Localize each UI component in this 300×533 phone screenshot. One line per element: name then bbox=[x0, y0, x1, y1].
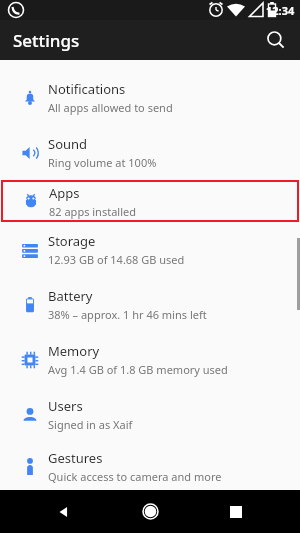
button[interactable]: Battery bbox=[0, 277, 300, 332]
staticText: Sound bbox=[48, 135, 88, 153]
button[interactable]: Gestures bbox=[0, 442, 300, 490]
staticText: Users bbox=[48, 397, 83, 415]
staticText: 12:34 bbox=[266, 3, 295, 18]
staticText: All apps allowed to send bbox=[48, 100, 173, 115]
staticText: 82 apps installed bbox=[49, 204, 136, 219]
button[interactable]: Memory bbox=[0, 332, 300, 387]
staticText: 12.93 GB of 14.68 GB used bbox=[48, 252, 185, 267]
button[interactable]: Apps bbox=[1, 180, 299, 222]
staticText: Memory bbox=[48, 342, 100, 360]
staticText: Ring volume at 100% bbox=[48, 155, 157, 170]
button[interactable]: Recents bbox=[214, 490, 258, 533]
staticText: Gestures bbox=[48, 449, 103, 467]
button[interactable]: Home bbox=[128, 490, 172, 533]
button[interactable]: Sound bbox=[0, 125, 300, 180]
staticText: Settings bbox=[13, 29, 80, 52]
staticText: Quick access to camera and more bbox=[48, 469, 222, 484]
button[interactable]: Search bbox=[258, 22, 294, 58]
button[interactable]: Users bbox=[0, 387, 300, 442]
staticText: Notifications bbox=[48, 80, 126, 98]
staticText: 38% – approx. 1 hr 46 mins left bbox=[48, 307, 207, 322]
staticText: Apps bbox=[49, 184, 80, 202]
staticText: Battery bbox=[48, 287, 93, 305]
staticText: Storage bbox=[48, 232, 96, 250]
button[interactable]: Back bbox=[42, 490, 86, 533]
staticText: Signed in as Xaif bbox=[48, 417, 133, 432]
staticText: Avg 1.4 GB of 1.8 GB memory used bbox=[48, 362, 228, 377]
button[interactable]: Storage bbox=[0, 222, 300, 277]
button[interactable]: Notifications bbox=[0, 70, 300, 125]
